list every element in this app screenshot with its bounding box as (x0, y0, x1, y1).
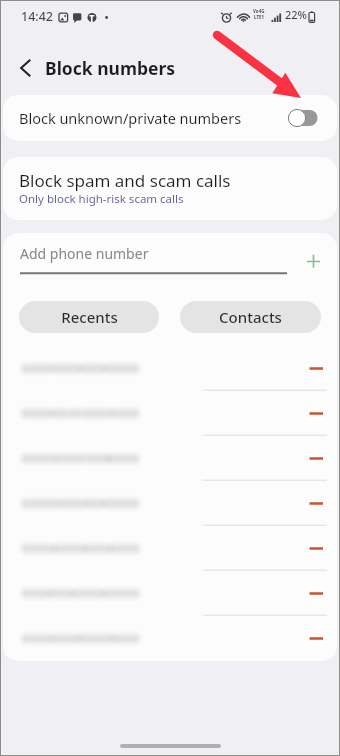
button[interactable]: Back (9, 52, 41, 84)
button[interactable] (3, 481, 337, 526)
staticText: Vo4G (253, 8, 265, 14)
staticText: Block spam and scam calls (19, 169, 231, 192)
button[interactable]: Contacts (180, 301, 321, 333)
button[interactable] (3, 346, 337, 391)
staticText: 22% (285, 7, 307, 22)
button[interactable] (3, 391, 337, 436)
button[interactable] (3, 571, 337, 616)
staticText: Add phone number (20, 244, 149, 263)
button[interactable] (3, 436, 337, 481)
button[interactable]: Recents (19, 301, 159, 333)
staticText: Only block high-risk scam calls (19, 191, 184, 207)
staticText: 14:42 (21, 8, 54, 25)
button[interactable]: Block spam and scam calls (3, 157, 337, 220)
staticText: Block numbers (45, 56, 176, 80)
button[interactable] (3, 526, 337, 571)
staticText: Recents (61, 307, 118, 327)
staticText: LTE1 (254, 14, 265, 20)
staticText: Block unknown/private numbers (19, 108, 242, 128)
button[interactable]: Add number (300, 248, 326, 274)
button[interactable] (3, 616, 337, 661)
staticText: Contacts (219, 307, 282, 327)
button[interactable]: Block unknown/private numbers (3, 95, 337, 141)
